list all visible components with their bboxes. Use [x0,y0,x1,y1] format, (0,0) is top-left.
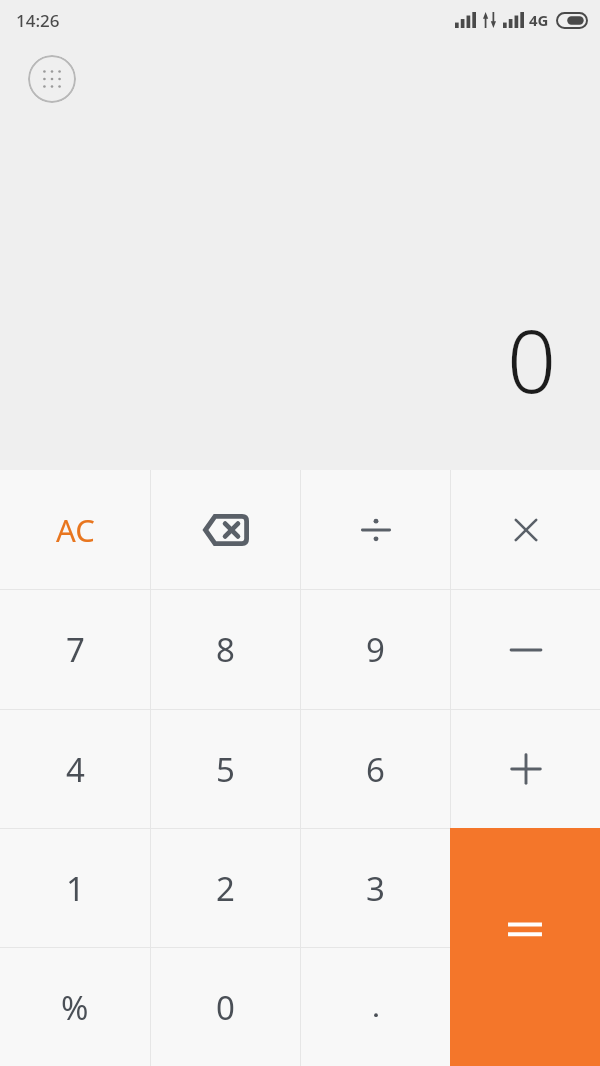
staticText: 4G [529,10,549,30]
staticText: 14:26 [16,9,60,32]
staticText: 8 [216,627,235,672]
button[interactable]: 4 [0,710,150,828]
button[interactable]: Equals [450,828,600,1066]
button[interactable]: 8 [151,590,300,709]
button[interactable]: 0 [151,948,300,1066]
button[interactable]: Divide [301,470,450,589]
staticText: 7 [66,627,85,672]
button[interactable]: Plus [451,710,600,828]
button[interactable]: 5 [151,710,300,828]
staticText: 1 [66,866,85,911]
button[interactable] [301,948,450,1066]
button[interactable]: 9 [301,590,450,709]
button[interactable]: Menu [28,55,76,103]
button[interactable]: 6 [301,710,450,828]
button[interactable]: 2 [151,829,300,947]
button[interactable]: % [0,948,150,1066]
staticText: AC [56,509,95,551]
button[interactable]: 7 [0,590,150,709]
button[interactable]: AC [0,470,150,589]
staticText: 4 [66,747,85,792]
button[interactable]: 3 [301,829,450,947]
button[interactable]: Multiply [451,470,600,589]
staticText: 9 [366,627,385,672]
button[interactable]: Minus [451,590,600,709]
staticText: 6 [366,747,385,792]
staticText: % [61,985,89,1030]
staticText: 3 [366,866,385,911]
staticText: 2 [216,866,235,911]
staticText: 0 [506,301,556,418]
button[interactable]: 1 [0,829,150,947]
button[interactable]: Backspace [151,470,300,589]
staticText: 5 [216,747,235,792]
staticText: 0 [216,985,235,1030]
